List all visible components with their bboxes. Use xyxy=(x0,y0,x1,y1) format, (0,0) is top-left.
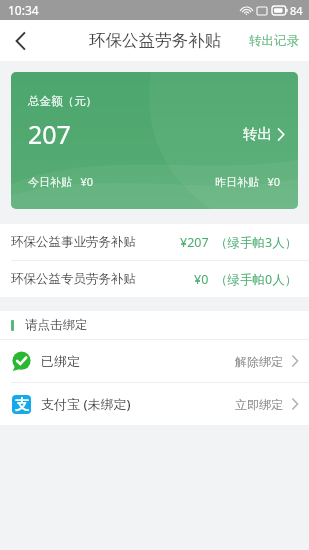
button[interactable]: 环保公益专员劳务补贴 xyxy=(0,261,309,297)
staticText: 立即绑定 xyxy=(235,397,283,412)
staticText: 今日补贴 ¥0 xyxy=(28,174,94,189)
button[interactable]: 环保公益事业劳务补贴 xyxy=(0,224,309,260)
staticText: 支付宝 (未绑定) xyxy=(41,395,131,413)
staticText: 环保公益专员劳务补贴 xyxy=(11,271,136,287)
staticText: 昨日补贴 ¥0 xyxy=(215,174,281,189)
staticText: 总金额（元） xyxy=(28,94,97,108)
staticText: （绿手帕3人） xyxy=(215,234,298,251)
staticText: 解除绑定 xyxy=(235,354,283,369)
staticText: 支 xyxy=(15,396,29,414)
staticText: ¥0 xyxy=(194,271,209,288)
staticText: （绿手帕0人） xyxy=(215,271,298,288)
button[interactable]: 已绑定 xyxy=(0,340,309,382)
staticText: 转出记录 xyxy=(249,33,299,49)
button[interactable]: 转出 xyxy=(229,119,298,149)
button[interactable]: 转出记录 xyxy=(239,20,309,61)
staticText: 请点击绑定 xyxy=(25,317,88,333)
staticText: 转出 xyxy=(243,125,272,143)
staticText: 已绑定 xyxy=(41,353,80,369)
staticText: 207 xyxy=(28,117,71,151)
button[interactable]: 支 xyxy=(0,383,309,425)
staticText: 环保公益劳务补贴 xyxy=(89,30,221,51)
staticText: ¥207 xyxy=(180,234,209,251)
staticText: 10:34 xyxy=(8,2,39,18)
staticText: 84 xyxy=(290,3,303,18)
button[interactable]: Back xyxy=(0,20,41,61)
staticText: 环保公益事业劳务补贴 xyxy=(11,234,136,250)
